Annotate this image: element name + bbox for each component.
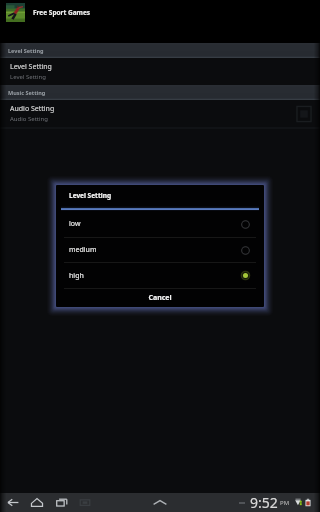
staticText: PM	[280, 499, 290, 507]
button[interactable]: 9:52	[239, 493, 311, 512]
staticText: Level Setting	[10, 62, 52, 72]
staticText: Cancel	[148, 293, 172, 303]
button[interactable]: medium	[56, 238, 264, 262]
button[interactable]: Back	[4, 493, 21, 512]
staticText: Audio Setting	[10, 104, 55, 114]
button[interactable]: Screenshot	[76, 493, 93, 512]
staticText: medium	[69, 245, 241, 255]
button[interactable]: Cancel	[56, 289, 264, 307]
button[interactable]: Recent apps	[53, 493, 70, 512]
staticText: Level Setting	[69, 191, 111, 200]
staticText: Music Setting	[8, 89, 46, 96]
button[interactable]: Audio Setting	[0, 100, 320, 127]
staticText: Free Sport Games	[33, 8, 91, 17]
button[interactable]: Notifications	[148, 493, 172, 512]
staticText: Audio Setting	[10, 115, 48, 123]
staticText: Level Setting	[8, 47, 44, 54]
staticText: low	[69, 219, 241, 229]
button[interactable]: Level Setting	[0, 58, 320, 85]
staticText: 9:52	[250, 493, 278, 512]
button[interactable]: high	[56, 263, 264, 288]
button[interactable]: low	[56, 211, 264, 237]
button[interactable]: Free Sport Games	[0, 0, 320, 24]
button[interactable]: Home	[28, 493, 45, 512]
staticText: high	[69, 271, 241, 281]
staticText: Level Setting	[10, 73, 46, 81]
